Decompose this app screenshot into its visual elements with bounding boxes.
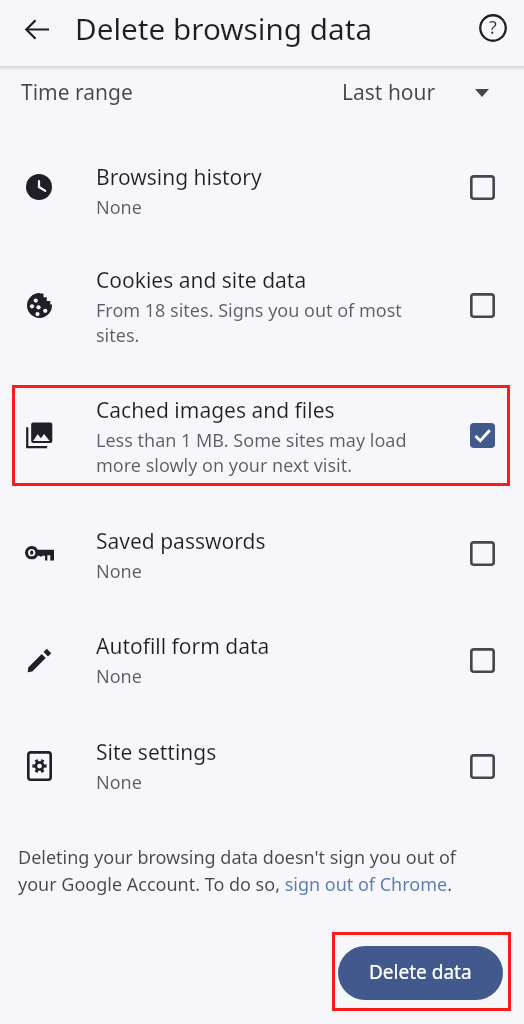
button[interactable]: Time range	[0, 62, 524, 126]
staticText: None	[96, 559, 142, 584]
button[interactable]: Site settings	[0, 688, 524, 844]
button[interactable]: Back	[14, 6, 60, 52]
staticText: Time range	[21, 78, 133, 107]
button[interactable]: Autofill form data	[0, 582, 524, 738]
staticText: sites.	[96, 323, 140, 348]
staticText: Cookies and site data	[96, 266, 307, 295]
button[interactable]: Cached images and files	[0, 329, 524, 541]
staticText: ?	[489, 15, 497, 40]
staticText: None	[96, 664, 142, 689]
button[interactable]: Browsing history	[0, 109, 524, 265]
button[interactable]: Help	[470, 5, 516, 51]
staticText: more slowly on your next visit.	[96, 453, 353, 478]
staticText: From 18 sites. Signs you out of most	[96, 298, 402, 323]
staticText: Browsing history	[96, 163, 262, 192]
staticText: Autofill form data	[96, 632, 270, 661]
button[interactable]: Cookies and site data	[0, 199, 524, 411]
button[interactable]: Delete data	[338, 946, 503, 1000]
staticText: Less than 1 MB. Some sites may load	[96, 428, 407, 453]
staticText: Delete browsing data	[75, 8, 373, 48]
staticText: Last hour	[342, 78, 436, 107]
staticText: Saved passwords	[96, 527, 266, 556]
staticText: Deleting your browsing data doesn't sign…	[18, 845, 488, 896]
staticText: Delete data	[369, 959, 472, 985]
staticText: Cached images and files	[96, 396, 335, 425]
button[interactable]: Saved passwords	[0, 475, 524, 631]
staticText: None	[96, 195, 142, 220]
staticText: None	[96, 770, 142, 795]
staticText: Site settings	[96, 738, 217, 767]
